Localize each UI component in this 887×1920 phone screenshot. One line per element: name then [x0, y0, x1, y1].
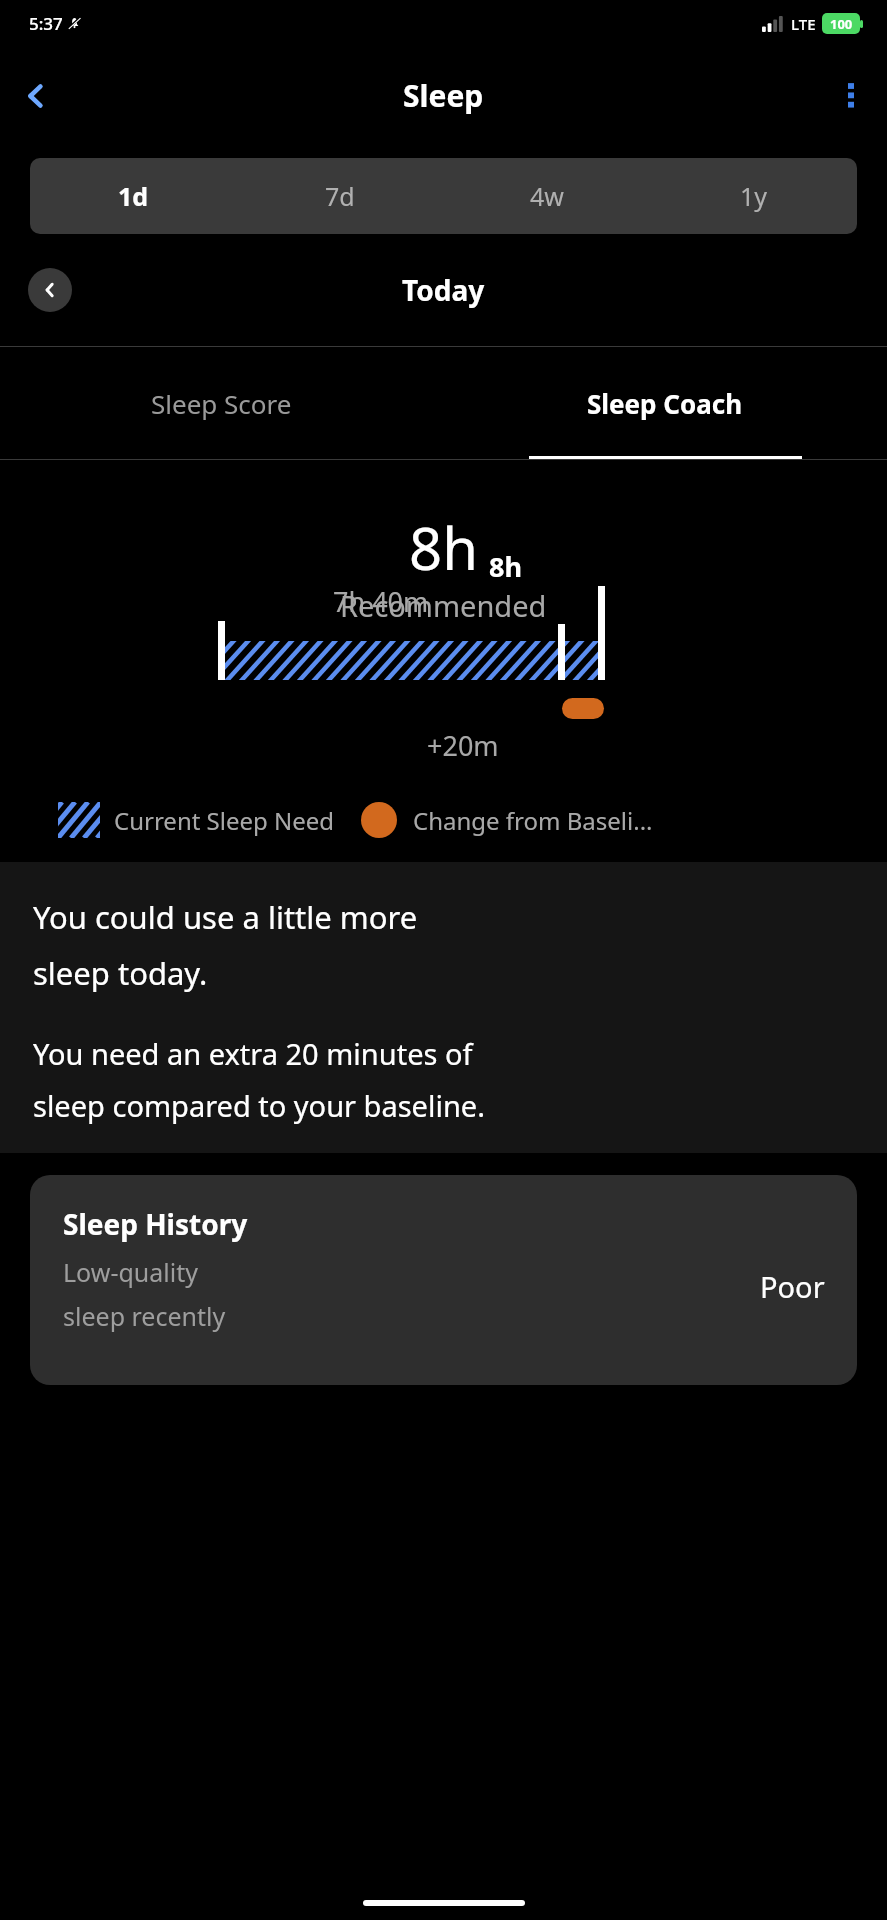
staticText: Sleep [403, 75, 484, 116]
staticText: Recommended [340, 586, 547, 625]
staticText: +20m [427, 727, 499, 764]
button[interactable]: More options [825, 70, 877, 122]
staticText: Change from Baseli... [413, 804, 653, 837]
staticText: Low-quality sleep recently [63, 1255, 226, 1333]
staticText: 8h [489, 548, 522, 585]
staticText: Today [402, 271, 485, 309]
staticText: Current Sleep Need [114, 804, 335, 837]
button[interactable]: Sleep Coach [443, 347, 887, 460]
staticText: Poor [760, 1267, 825, 1306]
staticText: 5:37 [29, 12, 63, 35]
staticText: 4w [530, 179, 564, 213]
staticText: Sleep Coach [587, 386, 743, 421]
staticText: 8h [409, 508, 479, 587]
staticText: 100 [830, 15, 853, 33]
button[interactable]: 1d [30, 158, 236, 234]
staticText: Sleep Score [151, 386, 292, 421]
staticText: You need an extra 20 minutes of sleep co… [33, 1034, 485, 1125]
staticText: 1y [740, 179, 768, 213]
button[interactable]: 4w [443, 158, 650, 234]
staticText: 7h 40m [333, 583, 429, 620]
button[interactable]: Back [10, 70, 62, 122]
button[interactable]: Sleep History [30, 1175, 857, 1385]
staticText: You could use a little more sleep today. [33, 896, 418, 994]
staticText: 1d [118, 179, 149, 213]
button[interactable]: 7d [236, 158, 443, 234]
staticText: Sleep History [63, 1205, 248, 1243]
button[interactable]: Previous day [28, 268, 72, 312]
staticText: 7d [325, 179, 355, 213]
button[interactable]: 1y [650, 158, 857, 234]
staticText: LTE [791, 14, 816, 34]
button[interactable]: Sleep Score [0, 347, 443, 460]
